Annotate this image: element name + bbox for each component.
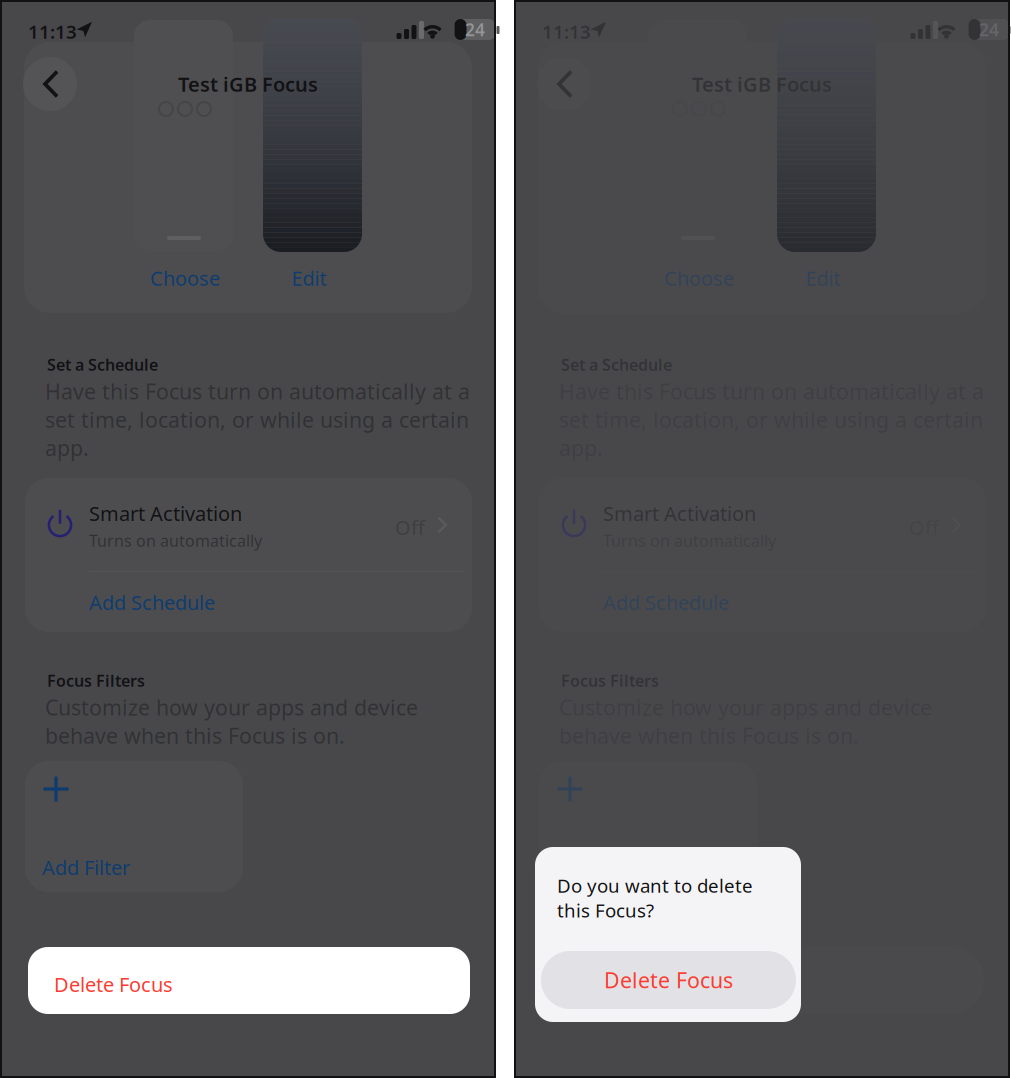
button[interactable]: Delete Focus bbox=[28, 947, 470, 1014]
button[interactable]: Back bbox=[537, 57, 591, 111]
staticText: Delete Focus bbox=[604, 966, 733, 994]
button[interactable]: Edit bbox=[778, 257, 868, 299]
button[interactable]: Choose bbox=[639, 257, 759, 299]
button[interactable]: Smart Activation bbox=[25, 478, 472, 571]
staticText: Customize how your apps and device behav… bbox=[45, 693, 418, 750]
staticText: Off bbox=[395, 514, 425, 541]
staticText: Focus Filters bbox=[47, 670, 145, 691]
button[interactable]: Add Filter bbox=[25, 761, 243, 892]
staticText: Turns on automatically bbox=[603, 530, 776, 551]
staticText: Add Schedule bbox=[603, 589, 729, 616]
staticText: Add Schedule bbox=[89, 589, 215, 616]
button[interactable]: Add Schedule bbox=[25, 571, 472, 632]
staticText: Have this Focus turn on automatically at… bbox=[45, 377, 470, 462]
staticText: Test iGB Focus bbox=[692, 71, 832, 97]
staticText: Set a Schedule bbox=[561, 354, 672, 375]
staticText: Edit bbox=[291, 265, 326, 291]
staticText: 24 bbox=[465, 18, 485, 41]
button[interactable] bbox=[542, 947, 984, 1014]
button[interactable]: Delete Focus bbox=[541, 951, 796, 1009]
staticText: Test iGB Focus bbox=[178, 71, 318, 97]
staticText: Add Filter bbox=[42, 854, 130, 881]
staticText: Do you want to delete this Focus? bbox=[557, 873, 753, 923]
button[interactable]: Add Filter bbox=[539, 761, 757, 892]
staticText: Delete Focus bbox=[54, 971, 173, 998]
staticText: Add Filter bbox=[556, 854, 644, 881]
staticText: Focus Filters bbox=[561, 670, 659, 691]
staticText: 11:13 bbox=[28, 19, 77, 44]
staticText: Set a Schedule bbox=[47, 354, 158, 375]
staticText: Turns on automatically bbox=[89, 530, 262, 551]
staticText: Choose bbox=[150, 265, 220, 291]
button[interactable]: Choose bbox=[125, 257, 245, 299]
staticText: 11:13 bbox=[542, 19, 591, 44]
staticText: Edit bbox=[805, 265, 840, 291]
button[interactable]: Back bbox=[23, 57, 77, 111]
staticText: Smart Activation bbox=[89, 500, 242, 527]
button[interactable]: Edit bbox=[264, 257, 354, 299]
staticText: Smart Activation bbox=[603, 500, 756, 527]
staticText: Choose bbox=[664, 265, 734, 291]
staticText: 24 bbox=[979, 18, 999, 41]
